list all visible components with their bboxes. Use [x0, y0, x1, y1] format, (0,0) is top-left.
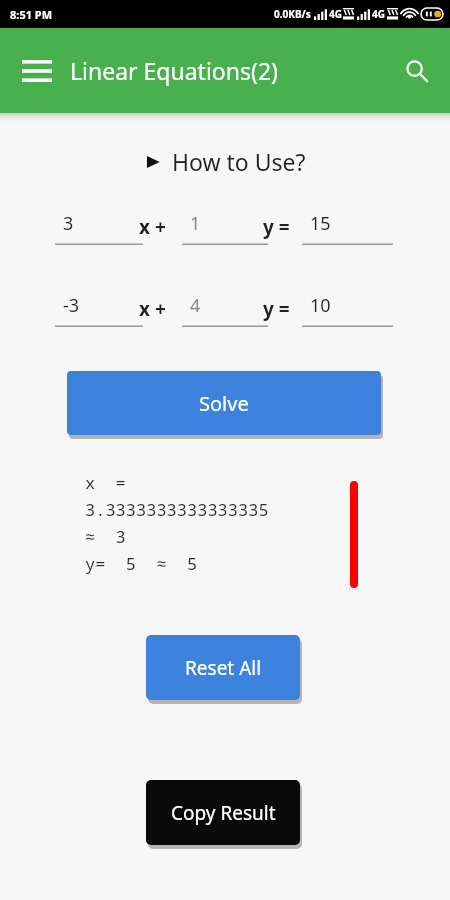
staticText: -3	[63, 293, 80, 318]
staticText: x +	[139, 296, 166, 322]
button[interactable]: 1	[182, 203, 268, 251]
staticText: Reset All	[185, 655, 262, 681]
staticText: 4G	[372, 7, 385, 21]
button[interactable]: -3	[55, 285, 143, 333]
staticText: y =	[263, 296, 290, 322]
staticText: 8:51 PM	[10, 7, 53, 22]
button[interactable]: 15	[302, 203, 393, 251]
staticText: x =	[85, 471, 126, 498]
staticText: ≈ 3	[85, 525, 126, 552]
staticText: 4G	[329, 7, 342, 21]
button[interactable]: How to Use?	[0, 146, 450, 177]
staticText: 0.0KB/s	[274, 7, 311, 21]
staticText: Solve	[199, 390, 249, 417]
button[interactable]: Search	[394, 48, 440, 94]
staticText: 3	[63, 211, 74, 236]
staticText: 10	[310, 293, 331, 318]
button[interactable]: Open navigation menu	[14, 48, 60, 94]
staticText: 3.3333333333333335	[85, 498, 269, 525]
staticText: Linear Equations(2)	[70, 55, 278, 86]
staticText: 1	[190, 211, 201, 236]
button[interactable]: Copy Result	[146, 780, 300, 845]
button[interactable]: 4	[182, 285, 268, 333]
staticText: How to Use?	[172, 146, 306, 177]
staticText: 15	[310, 211, 331, 236]
button[interactable]: 10	[302, 285, 393, 333]
staticText: x +	[139, 214, 166, 240]
staticText: y =	[263, 214, 290, 240]
button[interactable]: x =	[85, 471, 340, 579]
staticText: 4	[190, 293, 201, 318]
button[interactable]: Solve	[67, 371, 381, 435]
staticText: y= 5 ≈ 5	[85, 552, 198, 579]
button[interactable]: Reset All	[146, 635, 300, 700]
staticText: Copy Result	[171, 800, 276, 826]
button[interactable]: 3	[55, 203, 143, 251]
